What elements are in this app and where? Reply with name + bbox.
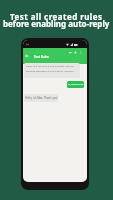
other: Back: [25, 54, 29, 58]
button[interactable]: Back: [23, 48, 87, 64]
other: More options: [79, 51, 82, 54]
staticText: Hi, how are you?: [68, 83, 84, 86]
staticText: Hello, you can test all the problem rule…: [26, 64, 75, 73]
staticText: Test Rules: [34, 55, 49, 59]
other: Video call: [69, 51, 72, 54]
other: Call: [74, 51, 77, 54]
staticText: Test all created rules: [10, 11, 103, 22]
staticText: Hello, it's Max. Thank you!: [25, 96, 58, 100]
staticText: before enabling auto-reply: [3, 18, 110, 29]
